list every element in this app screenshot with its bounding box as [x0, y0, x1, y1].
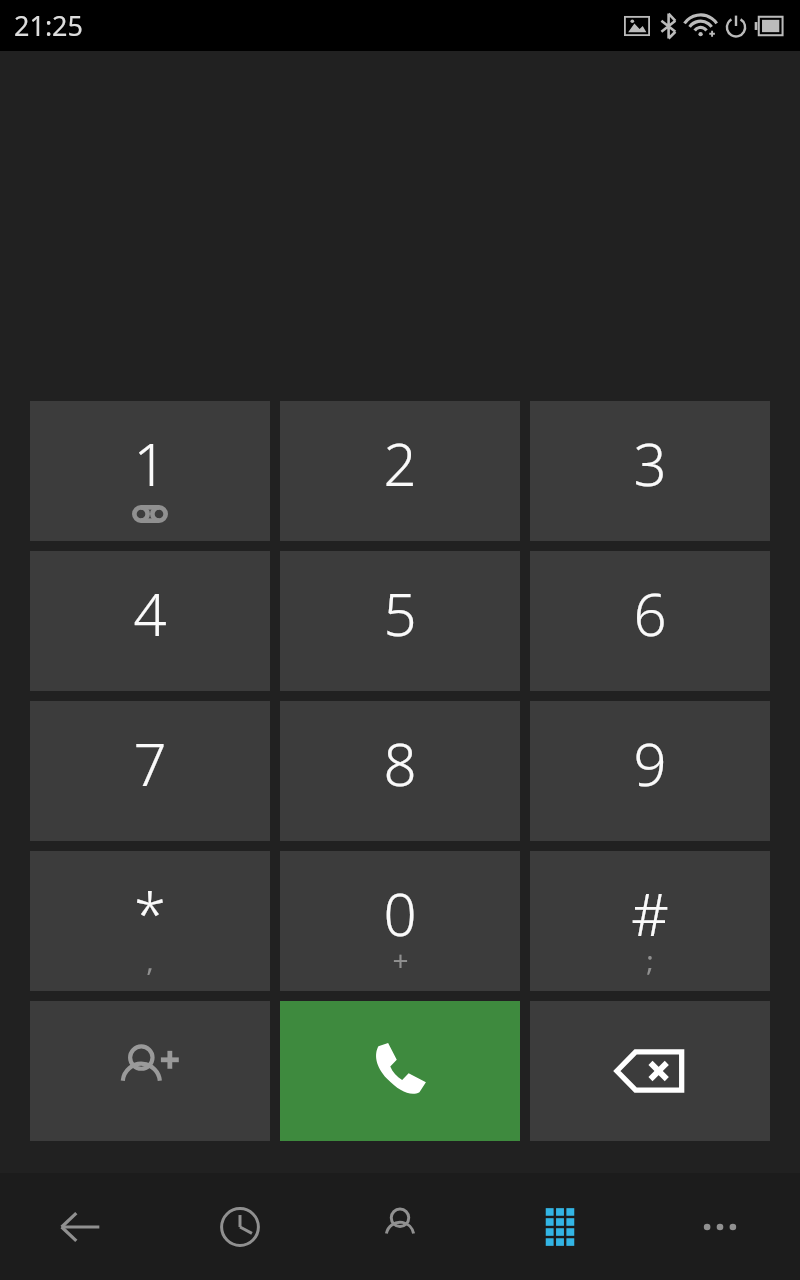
- staticText: 5: [383, 574, 417, 653]
- button[interactable]: More options: [640, 1173, 800, 1280]
- button[interactable]: 6: [530, 551, 770, 691]
- staticText: 21:25: [14, 7, 84, 44]
- button[interactable]: 1: [30, 401, 270, 541]
- staticText: 4: [133, 574, 167, 653]
- button[interactable]: Recents: [160, 1173, 320, 1280]
- button[interactable]: Back: [0, 1173, 160, 1280]
- staticText: *: [134, 874, 166, 953]
- staticText: 1: [133, 424, 167, 503]
- button[interactable]: 4: [30, 551, 270, 691]
- staticText: 3: [633, 424, 667, 503]
- staticText: #: [631, 874, 669, 953]
- button[interactable]: 2: [280, 401, 520, 541]
- button[interactable]: 9: [530, 701, 770, 841]
- button[interactable]: *: [30, 851, 270, 991]
- staticText: ;: [646, 941, 654, 979]
- button[interactable]: Keypad: [480, 1173, 640, 1280]
- button[interactable]: Add contact: [30, 1001, 270, 1141]
- staticText: 2: [383, 424, 417, 503]
- button[interactable]: 0: [280, 851, 520, 991]
- button[interactable]: #: [530, 851, 770, 991]
- button[interactable]: 7: [30, 701, 270, 841]
- button[interactable]: 5: [280, 551, 520, 691]
- staticText: ,: [146, 941, 154, 979]
- staticText: 6: [633, 574, 667, 653]
- staticText: 7: [133, 724, 167, 803]
- staticText: 9: [633, 724, 667, 803]
- button[interactable]: Contacts: [320, 1173, 480, 1280]
- button[interactable]: 8: [280, 701, 520, 841]
- staticText: 0: [383, 874, 417, 953]
- button[interactable]: 3: [530, 401, 770, 541]
- staticText: 8: [383, 724, 417, 803]
- button[interactable]: Delete: [530, 1001, 770, 1141]
- button[interactable]: Call: [280, 1001, 520, 1141]
- staticText: +: [392, 941, 409, 979]
